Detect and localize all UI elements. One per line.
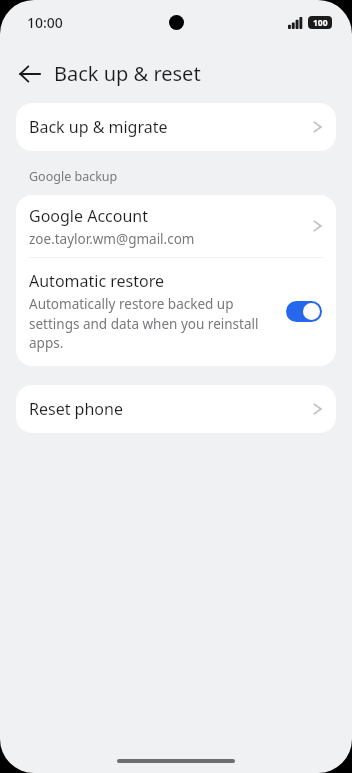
- button[interactable]: Reset phone: [16, 385, 336, 433]
- button[interactable]: Back up & migrate: [16, 103, 336, 151]
- staticText: 10:00: [27, 13, 63, 32]
- staticText: Google backup: [29, 168, 118, 185]
- button[interactable]: Google Account: [16, 195, 336, 257]
- staticText: Back up & reset: [54, 60, 201, 87]
- staticText: zoe.taylor.wm@gmail.com: [29, 230, 195, 248]
- staticText: Back up & migrate: [29, 116, 168, 138]
- staticText: Google Account: [29, 205, 148, 227]
- button[interactable]: Automatic restore: [16, 258, 336, 366]
- staticText: Reset phone: [29, 398, 123, 420]
- staticText: 100: [313, 17, 328, 29]
- staticText: Automatically restore backed up settings…: [29, 295, 274, 352]
- staticText: Automatic restore: [29, 270, 164, 292]
- button[interactable]: Back: [9, 53, 51, 95]
- button[interactable]: Automatic restore toggle: [286, 301, 322, 322]
